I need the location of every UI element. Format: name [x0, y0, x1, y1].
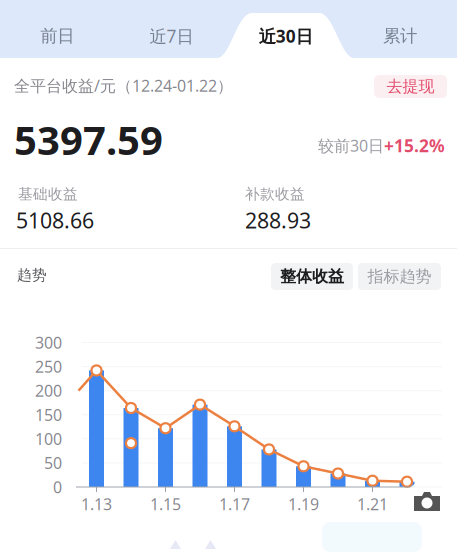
staticText: 近7日 [149, 24, 193, 47]
button[interactable]: 近30日 [228, 0, 343, 58]
staticText: 200 [35, 380, 62, 401]
staticText: 50 [44, 452, 62, 473]
button[interactable]: 累计 [343, 0, 457, 58]
staticText: 250 [35, 356, 62, 377]
staticText: +15.2% [384, 134, 445, 157]
button[interactable]: 去提现 [374, 75, 447, 98]
staticText: 5108.66 [16, 206, 94, 234]
staticText: 100 [35, 428, 62, 449]
button[interactable]: 近7日 [114, 0, 228, 58]
staticText: 基础收益 [18, 185, 78, 203]
staticText: 288.93 [245, 206, 311, 234]
staticText: 较前30日 [318, 135, 384, 156]
button[interactable]: 指标趋势 [358, 263, 441, 290]
staticText: 累计 [383, 25, 417, 47]
staticText: 整体收益 [280, 267, 344, 286]
staticText: 1.19 [288, 493, 319, 515]
staticText: 1.21 [357, 493, 388, 515]
button[interactable]: Camera [405, 480, 449, 524]
staticText: 150 [35, 404, 62, 425]
staticText: 指标趋势 [367, 267, 431, 286]
staticText: 趋势 [17, 266, 47, 284]
staticText: 近30日 [259, 24, 313, 47]
staticText: 全平台收益/元（12.24-01.22） [14, 75, 233, 96]
button[interactable]: 前日 [0, 0, 114, 58]
staticText: 补款收益 [245, 185, 305, 203]
staticText: 去提现 [386, 77, 434, 96]
staticText: 0 [53, 476, 62, 498]
staticText: 前日 [40, 25, 74, 47]
staticText: 1.17 [219, 493, 250, 515]
button[interactable]: 整体收益 [271, 263, 353, 290]
staticText: 1.15 [150, 493, 181, 515]
staticText: 5397.59 [14, 113, 163, 166]
staticText: 1.13 [81, 493, 112, 515]
staticText: 300 [35, 332, 62, 353]
